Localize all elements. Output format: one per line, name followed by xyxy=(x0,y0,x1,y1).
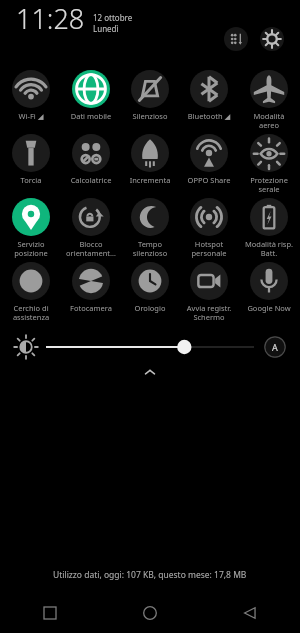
staticText: Dati mobile xyxy=(64,111,118,121)
button[interactable]: Modalità aereo xyxy=(241,70,297,130)
button[interactable]: Torcia xyxy=(3,134,59,185)
staticText: Wi-Fi ◢ xyxy=(4,111,58,121)
staticText: Lunedì xyxy=(93,23,119,34)
staticText: Torcia xyxy=(4,175,58,185)
button[interactable]: Servizio posizione xyxy=(3,198,59,258)
staticText: Tempo silenzioso xyxy=(123,239,177,258)
button[interactable]: Modifica xyxy=(224,27,248,51)
staticText: Orologio xyxy=(123,303,177,313)
staticText: 11:28 xyxy=(16,0,85,37)
staticText: Hotspot personale xyxy=(182,239,236,258)
button[interactable]: Avvia registr. Schermo xyxy=(181,262,237,322)
button[interactable]: Tempo silenzioso xyxy=(122,198,178,258)
staticText: Fotocamera xyxy=(64,303,118,313)
button[interactable]: Blocco orientament… xyxy=(63,198,119,258)
staticText: Modalità risp. Batt. xyxy=(242,239,296,258)
staticText: Bluetooth ◢ xyxy=(182,111,236,121)
button[interactable]: Fotocamera xyxy=(63,262,119,313)
staticText: Cerchio di assistenza xyxy=(4,303,58,322)
button[interactable]: Orologio xyxy=(122,262,178,313)
staticText: Calcolatrice xyxy=(64,175,118,185)
button[interactable]: Bluetooth ◢ xyxy=(181,70,237,121)
button[interactable]: Luminosità automatica xyxy=(264,336,286,358)
button[interactable]: OPPO Share xyxy=(181,134,237,185)
button[interactable]: Silenzioso xyxy=(122,70,178,121)
staticText: Silenzioso xyxy=(123,111,177,121)
button[interactable]: Incrementa xyxy=(122,134,178,185)
staticText: Servizio posizione xyxy=(4,239,58,258)
button[interactable]: Protezione serale xyxy=(241,134,297,194)
button[interactable]: Wi-Fi ◢ xyxy=(3,70,59,121)
staticText: Utilizzo dati, oggi: 107 KB, questo mese… xyxy=(53,569,247,581)
staticText: Modalità aereo xyxy=(242,111,296,130)
staticText: Avvia registr. Schermo xyxy=(182,303,236,322)
staticText: 12 ottobre xyxy=(93,12,133,23)
staticText: Blocco orientament… xyxy=(64,239,118,258)
staticText: A xyxy=(272,341,278,353)
button[interactable]: Indietro xyxy=(200,593,300,633)
button[interactable]: Google Now xyxy=(241,262,297,313)
button[interactable]: Dati mobile xyxy=(63,70,119,121)
button[interactable]: Impostazioni xyxy=(260,27,284,51)
button[interactable]: Cerchio di assistenza xyxy=(3,262,59,322)
button[interactable]: Calcolatrice xyxy=(63,134,119,185)
button[interactable] xyxy=(46,335,254,359)
staticText: OPPO Share xyxy=(182,175,236,185)
staticText: Incrementa xyxy=(123,175,177,185)
button[interactable]: Luminosità xyxy=(14,335,38,359)
button[interactable]: Home xyxy=(100,593,200,633)
staticText: Google Now xyxy=(242,303,296,313)
button[interactable]: Recenti xyxy=(0,593,100,633)
button[interactable]: Comprimi xyxy=(0,362,300,382)
button[interactable]: Modalità risp. Batt. xyxy=(241,198,297,258)
button[interactable]: Hotspot personale xyxy=(181,198,237,258)
staticText: Protezione serale xyxy=(242,175,296,194)
